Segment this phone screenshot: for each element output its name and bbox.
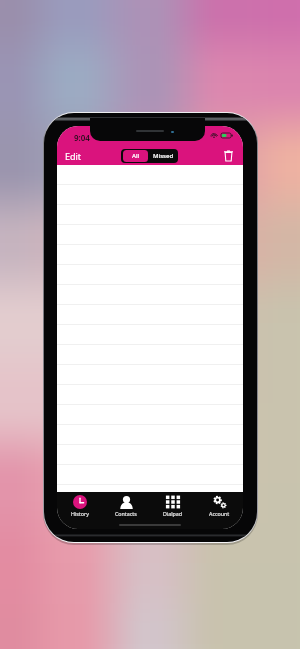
button[interactable] [57,165,243,185]
button[interactable] [57,285,243,305]
button[interactable] [57,305,243,325]
button[interactable]: Account [196,492,243,517]
button[interactable]: Edit [62,149,85,163]
staticText: Missed [153,152,174,160]
button[interactable] [57,185,243,205]
button[interactable] [57,205,243,225]
button[interactable] [57,325,243,345]
staticText: History [71,510,89,517]
button[interactable] [57,365,243,385]
button[interactable] [57,405,243,425]
button[interactable] [57,465,243,485]
button[interactable]: History [57,492,103,517]
button[interactable]: Dialpad [149,492,196,517]
button[interactable] [57,225,243,245]
button[interactable] [57,265,243,285]
button[interactable]: Contacts [103,492,149,517]
staticText: Edit [65,150,82,162]
button[interactable] [57,385,243,405]
staticText: Account [209,510,230,517]
staticText: Contacts [115,510,137,517]
button[interactable]: Missed [149,149,178,163]
button[interactable] [57,245,243,265]
button[interactable]: Delete [220,146,236,164]
button[interactable] [57,445,243,465]
staticText: Dialpad [163,510,183,517]
button[interactable] [57,345,243,365]
staticText: All [132,152,140,160]
button[interactable] [57,425,243,445]
staticText: 9:04 [74,132,90,143]
button[interactable]: All [123,150,148,162]
